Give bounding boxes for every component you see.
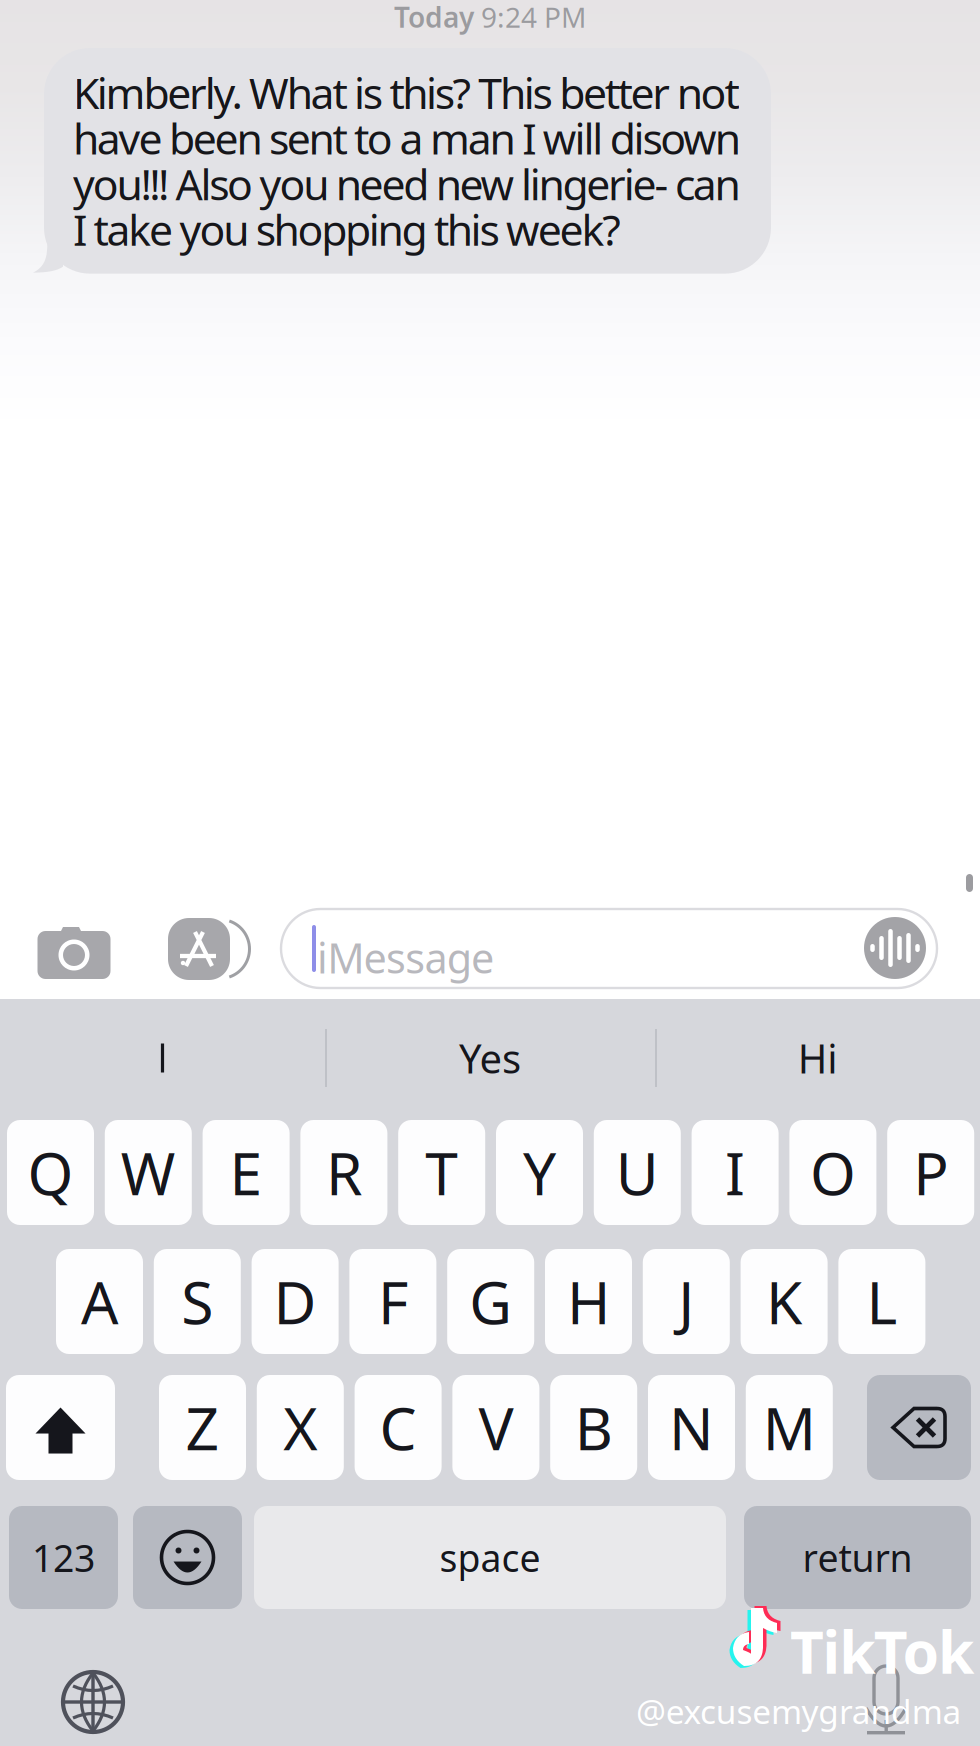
staticText: P (913, 1133, 948, 1211)
staticText: D (274, 1262, 317, 1340)
button[interactable]: W (105, 1120, 192, 1225)
button[interactable]: 123 (9, 1506, 118, 1609)
staticText: K (766, 1262, 802, 1340)
button[interactable]: L (838, 1249, 925, 1354)
button[interactable]: T (398, 1120, 485, 1225)
staticText: return (802, 1533, 912, 1582)
staticText: Y (523, 1133, 556, 1211)
button[interactable]: B (550, 1375, 637, 1480)
staticText: space (439, 1533, 540, 1582)
button[interactable]: iMessage (281, 909, 937, 988)
staticText: A (81, 1262, 118, 1340)
button[interactable]: I (0, 1014, 325, 1102)
button[interactable]: Yes (325, 1014, 655, 1102)
button[interactable]: K (741, 1249, 828, 1354)
button[interactable]: Next keyboard (62, 1671, 124, 1733)
button[interactable]: Shift (6, 1375, 115, 1480)
staticText: Hi (798, 1031, 837, 1084)
staticText: iMessage (317, 930, 494, 985)
button[interactable]: J (643, 1249, 730, 1354)
button[interactable]: Hi (655, 1014, 980, 1102)
button[interactable]: Apps (166, 916, 232, 982)
staticText: J (678, 1262, 694, 1340)
button[interactable]: R (300, 1120, 387, 1225)
staticText: X (283, 1388, 317, 1466)
staticText: L (866, 1262, 897, 1340)
button[interactable]: S (154, 1249, 241, 1354)
button[interactable]: X (257, 1375, 344, 1480)
button[interactable]: C (355, 1375, 442, 1480)
button[interactable]: D (252, 1249, 339, 1354)
button[interactable]: E (203, 1120, 290, 1225)
button[interactable]: Emoji (133, 1506, 242, 1609)
staticText: H (567, 1262, 610, 1340)
button[interactable]: P (887, 1120, 974, 1225)
staticText: TikTok (790, 1612, 974, 1690)
button[interactable]: return (744, 1506, 971, 1609)
staticText: 123 (32, 1533, 95, 1582)
staticText: Q (27, 1133, 73, 1211)
staticText: F (378, 1262, 408, 1340)
staticText: Yes (459, 1031, 521, 1084)
staticText: C (380, 1388, 417, 1466)
staticText: E (230, 1133, 263, 1211)
button[interactable]: Delete (867, 1375, 971, 1480)
button[interactable]: Camera (36, 916, 112, 982)
button[interactable]: Z (159, 1375, 246, 1480)
staticText: N (669, 1388, 714, 1466)
button[interactable]: A (56, 1249, 143, 1354)
button[interactable]: V (452, 1375, 539, 1480)
staticText: Z (185, 1388, 219, 1466)
button[interactable]: O (789, 1120, 876, 1225)
staticText: V (478, 1388, 513, 1466)
button[interactable]: Y (496, 1120, 583, 1225)
staticText: R (326, 1133, 362, 1211)
staticText: G (469, 1262, 512, 1340)
staticText: W (121, 1133, 176, 1211)
button[interactable]: N (648, 1375, 735, 1480)
button[interactable]: space (254, 1506, 726, 1609)
button[interactable]: F (349, 1249, 436, 1354)
button[interactable]: Record audio message (862, 915, 928, 981)
button[interactable]: H (545, 1249, 632, 1354)
button[interactable]: M (746, 1375, 833, 1480)
button[interactable]: U (594, 1120, 681, 1225)
button[interactable]: I (692, 1120, 779, 1225)
staticText: T (425, 1133, 458, 1211)
staticText: I (725, 1133, 745, 1211)
staticText: M (763, 1388, 816, 1466)
staticText: S (181, 1262, 213, 1340)
staticText: Kimberly. What is this? This better not … (73, 64, 741, 258)
staticText: O (810, 1133, 856, 1211)
button[interactable]: G (447, 1249, 534, 1354)
staticText: U (616, 1133, 659, 1211)
staticText: @excusemygrandma (636, 1689, 961, 1733)
button[interactable]: Q (7, 1120, 94, 1225)
staticText: B (575, 1388, 613, 1466)
staticText: Today 9:24 PM (394, 0, 586, 36)
